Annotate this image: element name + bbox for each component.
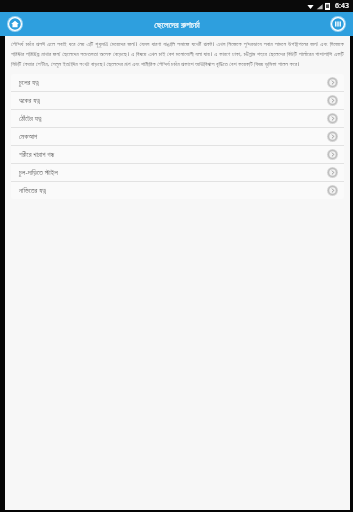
button[interactable]: Menu (329, 15, 347, 33)
staticText: ছেলেদের রুপচর্চা (154, 18, 200, 30)
staticText: নাভিতের যত্ন (19, 186, 327, 196)
button[interactable]: চুলের যত্ন (11, 74, 344, 91)
button[interactable]: শরীরে খারাপ গন্ধ (11, 146, 344, 163)
staticText: চুল-দাড়িতে স্টাইল (19, 168, 327, 178)
button[interactable]: ঠোঁটের যত্ন (11, 110, 344, 127)
staticText: চুলের যত্ন (19, 78, 327, 88)
button[interactable]: Home (6, 15, 24, 33)
staticText: 6:43 (335, 1, 349, 11)
staticText: মেকআপ (19, 133, 327, 140)
staticText: ঠোঁটের যত্ন (19, 114, 327, 124)
button[interactable]: নাভিতের যত্ন (11, 182, 344, 199)
staticText: সৌন্দর্য চর্চার প্রসঙ্গ এলে সবাই ধরে নেয… (11, 40, 344, 68)
button[interactable]: চুল-দাড়িতে স্টাইল (11, 164, 344, 181)
button[interactable]: মেকআপ (11, 128, 344, 145)
staticText: ত্বকের যত্ন (19, 96, 327, 106)
button[interactable]: ত্বকের যত্ন (11, 92, 344, 109)
staticText: শরীরে খারাপ গন্ধ (19, 150, 327, 160)
